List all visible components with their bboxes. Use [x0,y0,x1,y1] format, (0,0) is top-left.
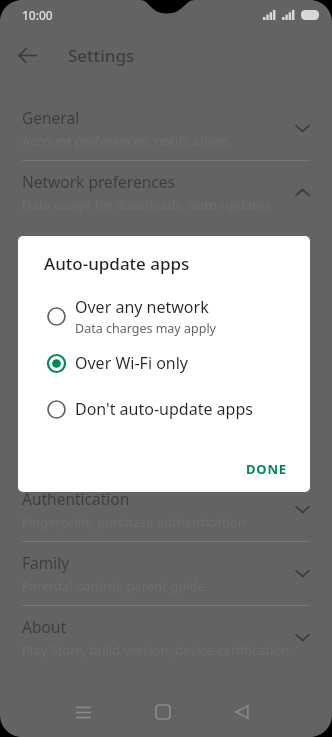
staticText: Network preferences [22,171,175,192]
button[interactable]: Network preferences [0,161,332,224]
staticText: DONE [246,460,287,478]
button[interactable]: Back [219,690,265,734]
staticText: General [22,107,80,128]
button[interactable]: Family [0,542,332,605]
staticText: Settings [68,44,135,67]
staticText: About [22,616,66,637]
button[interactable]: Over Wi-Fi only [18,340,310,386]
button[interactable]: Recent apps [60,690,106,734]
button[interactable]: General [0,97,332,160]
staticText: 10:00 [22,7,53,23]
button[interactable]: Authentication [0,478,332,541]
staticText: Don't auto-update apps [75,398,253,420]
staticText: Over Wi-Fi only [75,352,189,374]
button[interactable]: About [0,606,332,669]
button[interactable]: Back [11,39,43,71]
button[interactable]: Don't auto-update apps [18,386,310,432]
staticText: Over any network [75,296,209,318]
button[interactable]: DONE [238,454,295,484]
staticText: Authentication [22,488,130,509]
button[interactable]: Over any network [18,292,310,340]
button[interactable]: Home [140,690,186,734]
staticText: Auto-update apps [44,252,190,275]
staticText: Data charges may apply [75,320,216,337]
staticText: Family [22,552,70,573]
